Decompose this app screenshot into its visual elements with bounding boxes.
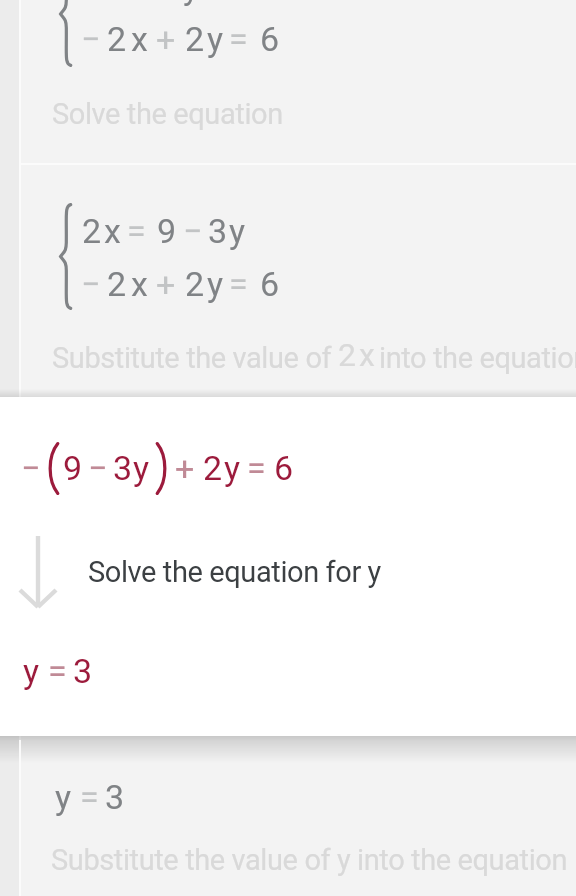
staticText: 2 bbox=[203, 448, 223, 488]
staticText: Solve the equation for y bbox=[88, 555, 381, 589]
staticText: y bbox=[133, 448, 150, 488]
staticText: − bbox=[81, 19, 101, 59]
staticText: − bbox=[183, 211, 203, 251]
staticText: 2 bbox=[82, 211, 102, 251]
staticText: − bbox=[81, 264, 101, 304]
staticText: 2 bbox=[107, 19, 127, 59]
staticText: y bbox=[207, 264, 224, 304]
staticText: 6 bbox=[260, 19, 280, 59]
staticText: 2 bbox=[338, 336, 356, 374]
staticText: y bbox=[224, 448, 241, 488]
staticText: − bbox=[88, 448, 108, 488]
staticText: x bbox=[131, 264, 148, 304]
staticText: = bbox=[247, 448, 266, 488]
staticText: 3 bbox=[105, 777, 125, 817]
staticText: x bbox=[359, 336, 375, 374]
staticText: − bbox=[21, 448, 41, 488]
staticText: 3 bbox=[113, 448, 133, 488]
staticText: + bbox=[175, 448, 195, 488]
staticText: = bbox=[229, 264, 248, 304]
staticText: 3 bbox=[73, 651, 93, 691]
staticText: 9 bbox=[63, 448, 83, 488]
button[interactable]: y bbox=[0, 748, 576, 896]
staticText: = bbox=[48, 651, 67, 691]
staticText: = bbox=[229, 19, 248, 59]
staticText: = bbox=[127, 211, 146, 251]
staticText: 6 bbox=[274, 448, 294, 488]
staticText: Substitute the value of bbox=[52, 341, 332, 375]
staticText: Substitute the value of y into the equat… bbox=[51, 843, 568, 877]
staticText: 3 bbox=[208, 211, 228, 251]
staticText: y bbox=[207, 19, 224, 59]
staticText: = bbox=[80, 777, 99, 817]
button[interactable]: y bbox=[0, 0, 576, 164]
staticText: y bbox=[183, 0, 200, 7]
staticText: y bbox=[55, 777, 72, 817]
staticText: 2 bbox=[185, 19, 205, 59]
staticText: x bbox=[104, 211, 121, 251]
staticText: into the equation bbox=[379, 341, 576, 375]
staticText: 9 bbox=[157, 211, 177, 251]
staticText: x bbox=[131, 19, 148, 59]
staticText: + bbox=[156, 19, 176, 59]
other: Next step bbox=[19, 536, 57, 608]
staticText: 6 bbox=[260, 264, 280, 304]
staticText: + bbox=[156, 264, 176, 304]
staticText: Solve the equation bbox=[52, 97, 283, 131]
button[interactable]: − bbox=[0, 397, 576, 736]
staticText: 2 bbox=[185, 264, 205, 304]
staticText: y bbox=[229, 211, 246, 251]
staticText: 2 bbox=[107, 264, 127, 304]
staticText: y bbox=[23, 651, 40, 691]
